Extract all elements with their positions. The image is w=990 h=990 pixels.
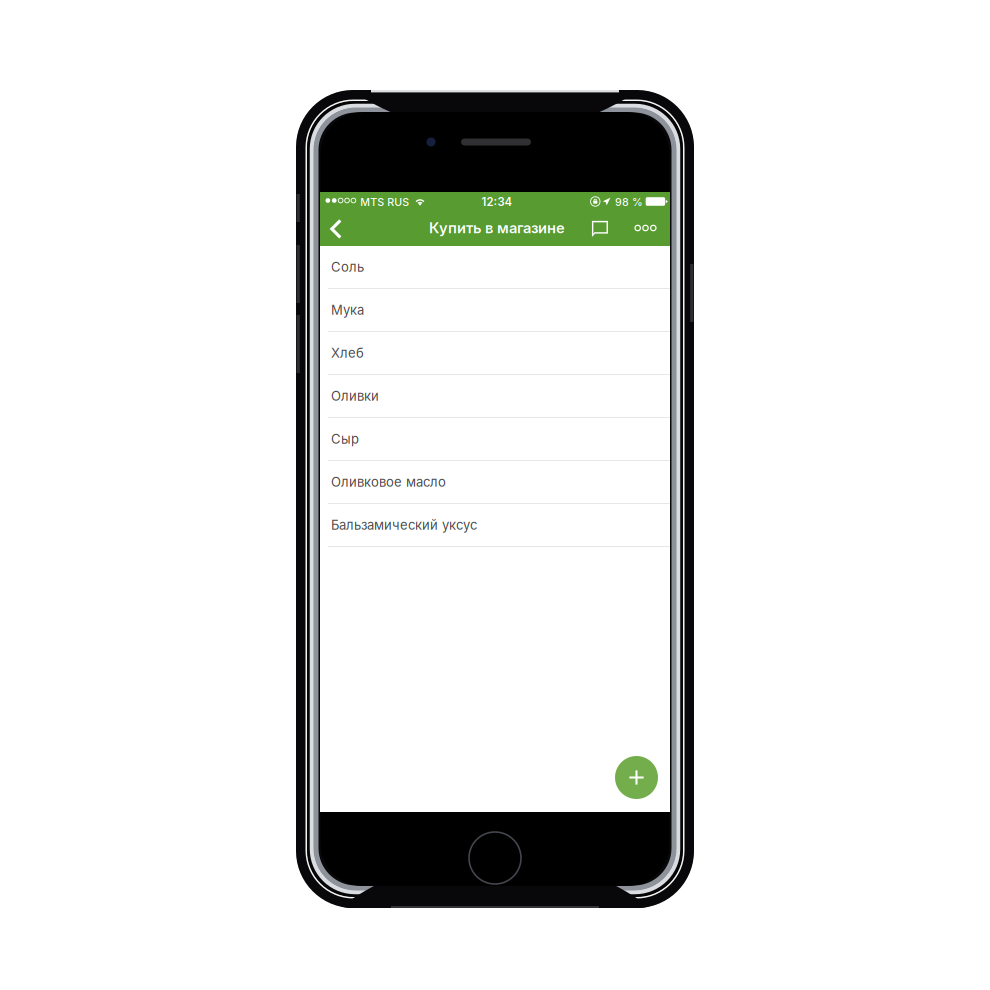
button[interactable]: Бальзамический уксус [320, 504, 670, 547]
button[interactable]: Хлеб [320, 332, 670, 375]
button[interactable]: Мука [320, 289, 670, 332]
button[interactable]: Оливковое масло [320, 461, 670, 504]
staticText: Соль [331, 259, 364, 275]
staticText: Хлеб [331, 345, 364, 361]
staticText: Оливковое масло [331, 474, 446, 490]
button[interactable]: Оливки [320, 375, 670, 418]
button[interactable]: Add item [615, 756, 658, 799]
staticText: Бальзамический уксус [331, 517, 477, 533]
staticText: Мука [331, 302, 364, 318]
staticText: Купить в магазине [429, 219, 565, 237]
staticText: MTS RUS [360, 195, 409, 208]
button[interactable]: Сыр [320, 418, 670, 461]
staticText: Оливки [331, 388, 379, 404]
staticText: 12:34 [481, 195, 512, 209]
staticText: 98 % [615, 195, 643, 208]
button[interactable]: Back [320, 213, 354, 246]
button[interactable]: More options [624, 213, 664, 246]
staticText: Сыр [331, 431, 359, 447]
button[interactable]: Соль [320, 246, 670, 289]
button[interactable]: Comments [584, 213, 624, 246]
